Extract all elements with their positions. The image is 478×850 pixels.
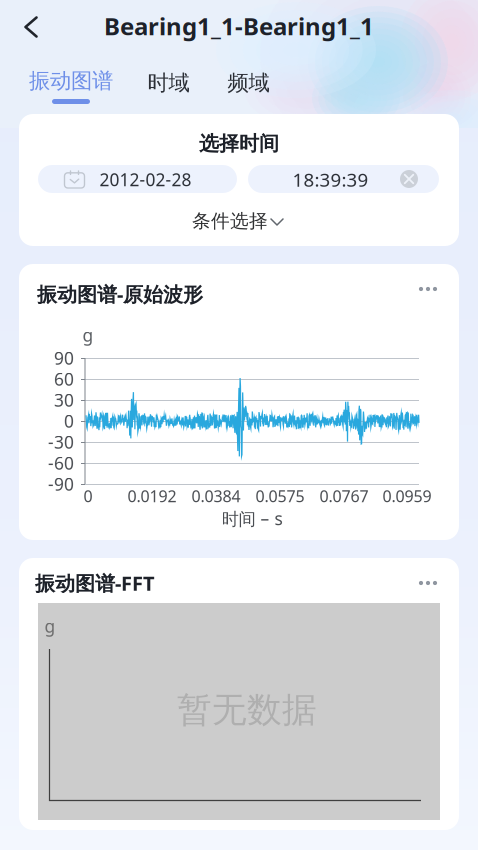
staticText: -60 xyxy=(48,451,74,474)
staticText: 18:39:39 xyxy=(292,167,368,192)
staticText: -30 xyxy=(48,430,74,453)
button[interactable]: 振动图谱 xyxy=(21,64,121,109)
staticText: 0 xyxy=(83,485,92,507)
staticText: 振动图谱-FFT xyxy=(35,570,155,596)
button[interactable]: 2012-02-28 xyxy=(38,165,237,193)
button[interactable]: 时域 xyxy=(135,63,201,103)
staticText: 0 xyxy=(64,409,74,432)
staticText: 时域 xyxy=(147,70,189,96)
button[interactable]: More options xyxy=(411,568,445,598)
staticText: g xyxy=(82,323,93,346)
staticText: 时间 – s xyxy=(221,507,282,530)
staticText: Bearing1_1-Bearing1_1 xyxy=(104,10,374,42)
staticText: 30 xyxy=(54,388,74,411)
staticText: 选择时间 xyxy=(199,131,279,156)
staticText: 0.0384 xyxy=(191,485,240,507)
staticText: 振动图谱-原始波形 xyxy=(37,281,203,307)
staticText: 0.0575 xyxy=(255,485,304,507)
staticText: 暂无数据 xyxy=(177,689,317,731)
staticText: 90 xyxy=(54,346,74,369)
staticText: 2012-02-28 xyxy=(99,168,191,191)
button[interactable]: 18:39:39 xyxy=(248,165,439,193)
staticText: 0.0767 xyxy=(319,485,368,507)
staticText: 0.0959 xyxy=(382,485,431,507)
button[interactable]: 条件选择 xyxy=(181,206,291,236)
staticText: 振动图谱 xyxy=(29,68,113,94)
staticText: 频域 xyxy=(227,70,269,96)
staticText: 60 xyxy=(54,367,74,390)
staticText: -90 xyxy=(48,472,74,495)
staticText: 0.0192 xyxy=(127,485,176,507)
button[interactable]: Back xyxy=(7,3,55,51)
button[interactable]: More options xyxy=(411,274,445,304)
staticText: g xyxy=(44,614,55,637)
button[interactable]: 频域 xyxy=(215,63,281,103)
staticText: 条件选择 xyxy=(192,209,268,232)
